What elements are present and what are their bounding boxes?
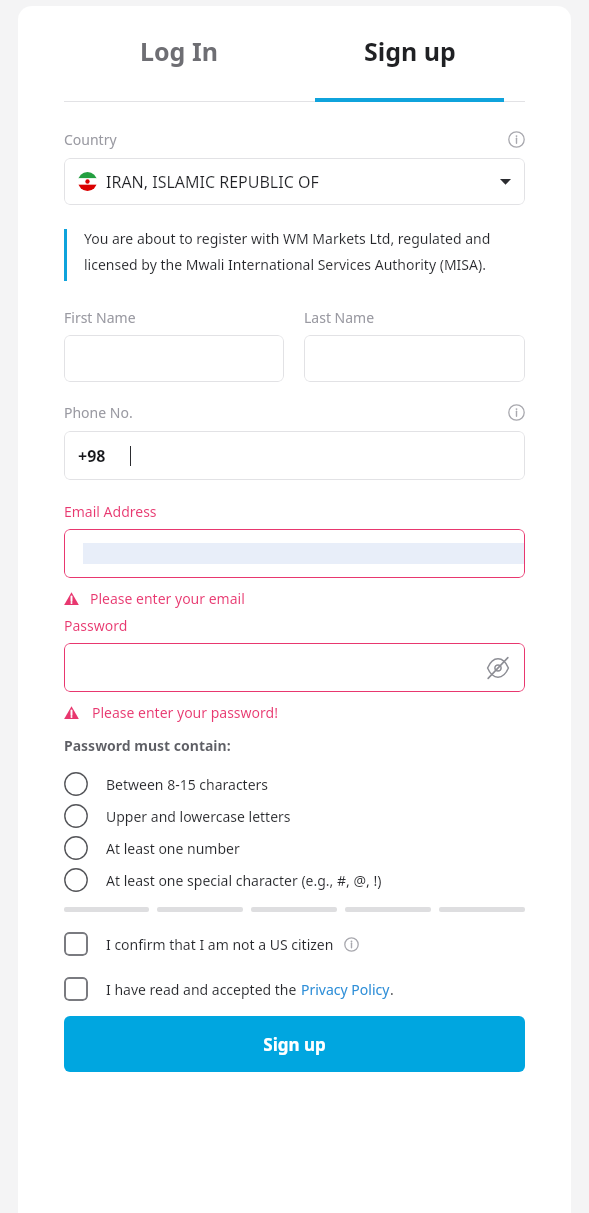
staticText: Please enter your email (90, 589, 245, 608)
staticText: Log In (140, 34, 218, 68)
staticText: I confirm that I am not a US citizen (106, 935, 334, 954)
staticText: At least one special character (e.g., #,… (106, 871, 382, 890)
staticText: At least one number (106, 839, 240, 858)
button[interactable]: Log In (64, 34, 294, 94)
staticText: Upper and lowercase letters (106, 807, 291, 826)
button[interactable]: Upper and lowercase letters (64, 800, 525, 832)
button[interactable]: Sign up (64, 1016, 525, 1072)
staticText: IRAN, ISLAMIC REPUBLIC OF (106, 171, 319, 193)
button[interactable]: +98 (64, 431, 525, 480)
staticText: Please enter your password! (92, 703, 278, 722)
staticText: Password (64, 616, 128, 635)
staticText: Country (64, 130, 117, 149)
button[interactable]: Sign up (294, 34, 525, 94)
staticText: Between 8-15 characters (106, 775, 269, 794)
button[interactable] (64, 335, 284, 382)
button[interactable]: More information (508, 131, 525, 148)
button[interactable]: Between 8-15 characters (64, 768, 525, 800)
staticText: . (390, 980, 394, 999)
staticText: Last Name (304, 308, 375, 327)
staticText: +98 (78, 445, 106, 467)
button[interactable]: More information (344, 937, 359, 952)
button[interactable]: At least one special character (e.g., #,… (64, 864, 525, 896)
button[interactable]: Show password (485, 655, 511, 681)
button[interactable]: More information (508, 404, 525, 421)
staticText: Sign up (263, 1033, 326, 1056)
button[interactable] (304, 335, 525, 382)
button[interactable]: Privacy Policy (301, 980, 390, 999)
staticText: Sign up (364, 34, 456, 68)
staticText: You are about to register with WM Market… (84, 229, 525, 275)
staticText: First Name (64, 308, 136, 327)
staticText: Password must contain: (64, 736, 231, 755)
staticText: Phone No. (64, 403, 133, 422)
button[interactable]: IRAN, ISLAMIC REPUBLIC OF (64, 158, 525, 205)
button[interactable]: I confirm that I am not a US citizen (64, 932, 525, 956)
button[interactable]: I have read and accepted the (64, 977, 525, 1001)
button[interactable]: At least one number (64, 832, 525, 864)
button[interactable]: Show password (64, 643, 525, 692)
staticText: Email Address (64, 502, 157, 521)
button[interactable] (64, 529, 525, 578)
staticText: I have read and accepted the (106, 980, 301, 999)
